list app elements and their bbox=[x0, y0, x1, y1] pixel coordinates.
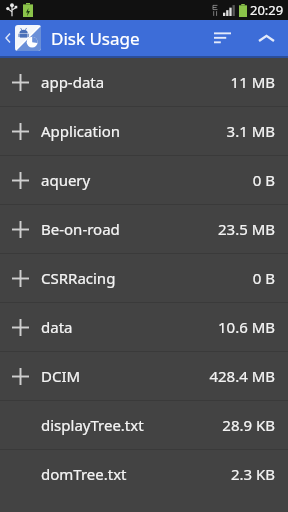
staticText: aquery bbox=[41, 170, 91, 190]
staticText: 11 MB bbox=[230, 72, 275, 92]
button[interactable]: domTree.txt bbox=[0, 450, 288, 498]
staticText: app-data bbox=[41, 72, 105, 92]
staticText: 23.5 MB bbox=[217, 219, 275, 239]
button[interactable]: app-data bbox=[0, 58, 288, 106]
staticText: displayTree.txt bbox=[41, 415, 144, 435]
button[interactable]: Application bbox=[0, 107, 288, 155]
staticText: 428.4 MB bbox=[209, 366, 275, 386]
staticText: CSRRacing bbox=[41, 268, 116, 288]
staticText: 0 B bbox=[252, 170, 275, 190]
staticText: Application bbox=[41, 121, 121, 141]
button[interactable]: Collapse bbox=[244, 20, 288, 56]
button[interactable]: Navigate up bbox=[0, 25, 43, 51]
button[interactable]: Be-on-road bbox=[0, 205, 288, 253]
button[interactable]: DCIM bbox=[0, 352, 288, 400]
staticText: 10.6 MB bbox=[217, 317, 275, 337]
staticText: 28.9 KB bbox=[222, 415, 275, 435]
staticText: 3.1 MB bbox=[226, 121, 275, 141]
button[interactable]: Sort bbox=[200, 20, 244, 56]
button[interactable]: data bbox=[0, 303, 288, 351]
staticText: Be-on-road bbox=[41, 219, 120, 239]
button[interactable]: CSRRacing bbox=[0, 254, 288, 302]
staticText: 0 B bbox=[252, 268, 275, 288]
button[interactable]: aquery bbox=[0, 156, 288, 204]
staticText: Disk Usage bbox=[51, 27, 140, 50]
button[interactable]: displayTree.txt bbox=[0, 401, 288, 449]
staticText: 20:29 bbox=[250, 1, 284, 19]
staticText: DCIM bbox=[41, 366, 81, 386]
staticText: domTree.txt bbox=[41, 464, 127, 484]
staticText: 2.3 KB bbox=[230, 464, 275, 484]
staticText: data bbox=[41, 317, 73, 337]
